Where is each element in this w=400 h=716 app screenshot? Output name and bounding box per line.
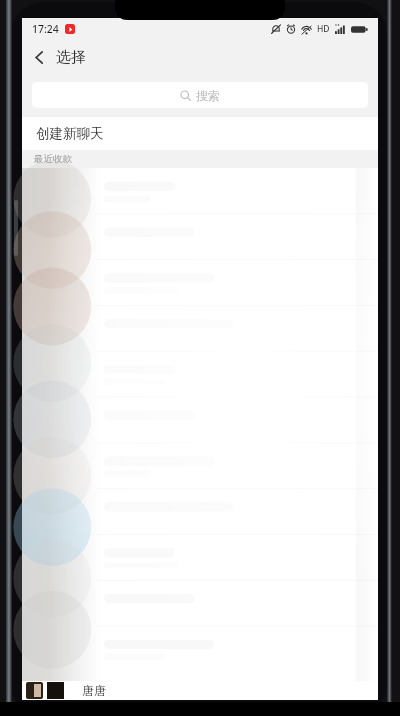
staticText: 搜索 <box>196 88 220 103</box>
button[interactable]: 搜索 <box>32 82 368 108</box>
staticText: 选择 <box>56 48 86 67</box>
staticText: 唐唐 <box>82 683 106 698</box>
button[interactable]: Back <box>22 40 56 74</box>
button[interactable]: 创建新聊天 <box>22 117 378 150</box>
staticText: 17:24 <box>32 22 59 36</box>
staticText: 最近收款 <box>34 153 72 165</box>
staticText: HD <box>317 23 330 35</box>
staticText: 创建新聊天 <box>36 125 104 142</box>
button[interactable]: 唐唐 <box>22 681 378 700</box>
